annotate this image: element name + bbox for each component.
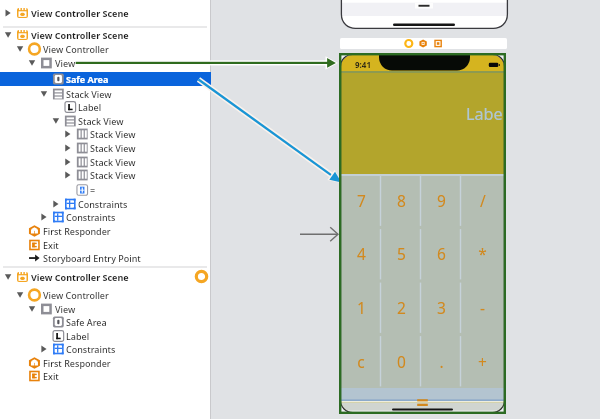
button[interactable]: 3 [421,280,461,334]
button[interactable]: Scene dock [340,38,507,49]
button[interactable]: View Controller Scene [0,28,211,42]
staticText: + [478,351,487,372]
staticText: Label [66,330,90,342]
staticText: View [55,303,76,315]
staticText: Stack View [66,88,112,100]
staticText: View Controller Scene [31,271,129,283]
staticText: View [55,57,76,69]
staticText: 4 [357,243,366,264]
button[interactable]: c [341,334,381,388]
button[interactable]: View [0,56,211,70]
staticText: = [90,184,96,196]
staticText: 9 [437,190,446,211]
button[interactable]: Stack View [0,127,211,141]
staticText: 2 [397,297,406,318]
button[interactable]: First Responder [0,356,211,370]
button[interactable]: 8 [381,174,421,227]
button[interactable]: * [461,227,504,280]
button[interactable]: = [0,183,211,197]
button[interactable]: 4 [341,227,381,280]
button[interactable]: Exit [0,238,211,252]
staticText: First Responder [43,225,111,237]
staticText: First Responder [43,357,111,369]
button[interactable]: Stack View [0,168,211,182]
staticText: Constraints [66,211,116,223]
button[interactable]: View Controller Scene [0,270,211,284]
staticText: 9:41 [355,59,371,70]
button[interactable]: . [421,334,461,388]
button[interactable]: Stack View [0,87,211,101]
staticText: 7 [357,190,366,211]
button[interactable]: Label [0,100,211,114]
button[interactable]: View [0,302,211,316]
button[interactable]: - [461,280,504,334]
staticText: Stack View [90,142,136,154]
staticText: Label [78,101,102,113]
staticText: Stack View [90,156,136,168]
staticText: * [478,243,487,264]
button[interactable]: Label [0,329,211,343]
button[interactable]: Safe Area [0,72,211,86]
button[interactable]: Exit [0,369,211,383]
staticText: 3 [437,297,446,318]
button[interactable]: 1 [341,280,381,334]
staticText: c [357,351,365,372]
staticText: Stack View [90,169,136,181]
staticText: Storyboard Entry Point [43,252,141,264]
staticText: Safe Area [66,73,109,85]
staticText: View Controller [43,43,109,55]
button[interactable]: Constraints [0,197,211,211]
staticText: View Controller Scene [31,29,129,41]
staticText: . [439,351,444,372]
button[interactable]: Constraints [0,342,211,356]
staticText: - [480,297,485,318]
button[interactable]: Stack View [0,155,211,169]
button[interactable]: Stack View [0,114,211,128]
button[interactable]: View Controller Scene [0,6,211,20]
button[interactable]: 0 [381,334,421,388]
button[interactable]: Storyboard Entry Point [0,251,211,265]
staticText: Safe Area [66,316,107,328]
button[interactable]: Constraints [0,210,211,224]
staticText: Exit [43,239,59,251]
button[interactable]: / [461,174,504,227]
button[interactable]: Stack View [0,141,211,155]
button[interactable]: 6 [421,227,461,280]
button[interactable]: 5 [381,227,421,280]
button[interactable]: 2 [381,280,421,334]
staticText: View Controller Scene [31,7,129,19]
button[interactable]: Safe Area [0,315,211,329]
button[interactable]: View Controller [0,288,211,302]
staticText: 1 [357,297,366,318]
staticText: 8 [397,190,406,211]
staticText: Constraints [66,343,116,355]
staticText: 0 [397,351,406,372]
button[interactable]: 7 [341,174,381,227]
staticText: Exit [43,370,59,382]
button[interactable]: + [461,334,504,388]
staticText: 5 [397,243,406,264]
button[interactable]: View Controller [0,42,211,56]
button[interactable]: First Responder [0,224,211,238]
staticText: 6 [437,243,446,264]
button[interactable]: Scene badge [196,271,207,282]
staticText: Label [466,103,504,125]
staticText: Constraints [78,198,128,210]
staticText: Stack View [78,115,124,127]
staticText: / [480,190,486,211]
staticText: Stack View [90,128,136,140]
staticText: View Controller [43,289,109,301]
button[interactable]: 9 [421,174,461,227]
